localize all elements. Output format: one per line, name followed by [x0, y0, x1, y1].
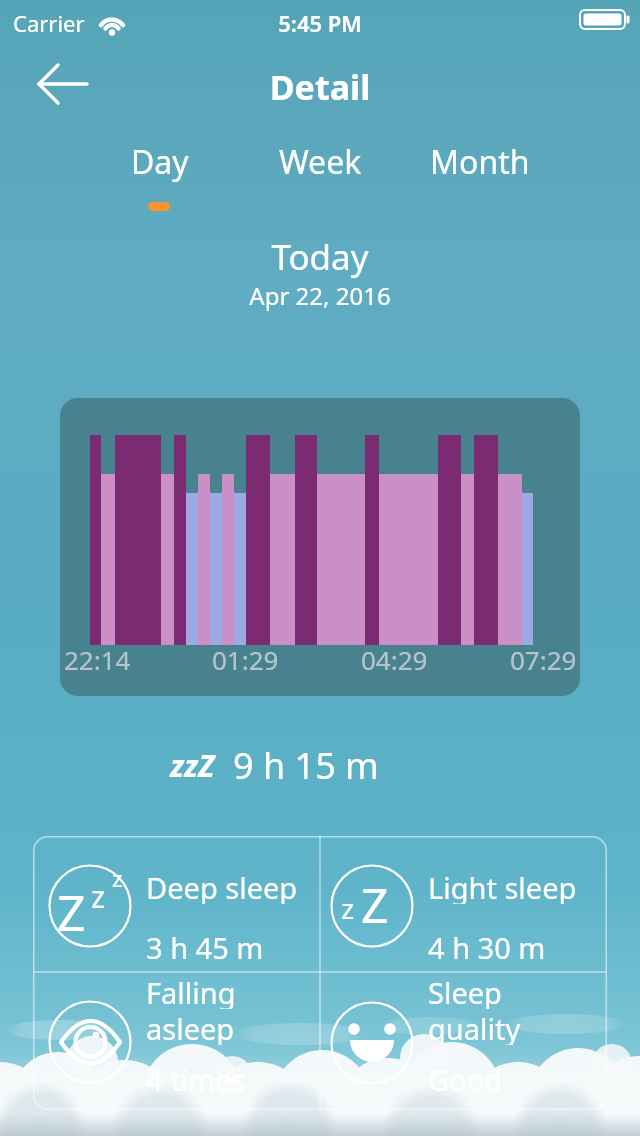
staticText: Carrier: [13, 8, 85, 38]
button[interactable]: Day: [80, 138, 240, 186]
staticText: Day: [131, 140, 189, 184]
staticText: Month: [430, 140, 530, 184]
staticText: Detail: [0, 64, 640, 110]
button[interactable]: [320, 972, 607, 1110]
staticText: 9 h 15 m: [233, 741, 379, 790]
staticText: z: [112, 863, 123, 893]
staticText: z: [91, 876, 106, 917]
staticText: Week: [279, 140, 362, 184]
staticText: zzZ: [170, 745, 215, 786]
staticText: asleep: [146, 1009, 235, 1045]
staticText: Sleep: [428, 973, 502, 1009]
button[interactable]: [320, 836, 607, 972]
staticText: Deep sleep: [146, 868, 298, 904]
staticText: Light sleep: [428, 868, 577, 904]
staticText: quality: [428, 1009, 521, 1045]
staticText: 22:14: [64, 642, 131, 677]
staticText: Apr 22, 2016: [0, 279, 640, 312]
staticText: 3 h 45 m: [146, 928, 264, 964]
staticText: 4 times: [146, 1060, 246, 1096]
staticText: Z: [361, 872, 389, 937]
staticText: z: [341, 889, 355, 927]
staticText: 07:29: [510, 642, 577, 677]
staticText: Today: [0, 233, 640, 281]
button[interactable]: Week: [240, 138, 400, 186]
staticText: 4 h 30 m: [428, 928, 546, 964]
button[interactable]: Month: [400, 138, 560, 186]
button[interactable]: [33, 972, 320, 1110]
button[interactable]: [30, 55, 95, 113]
staticText: 5:45 PM: [0, 8, 640, 38]
staticText: Falling: [146, 973, 236, 1009]
staticText: Z: [57, 878, 86, 946]
button[interactable]: [33, 836, 320, 972]
staticText: 01:29: [212, 642, 279, 677]
staticText: 04:29: [361, 642, 428, 677]
staticText: Good: [428, 1060, 503, 1096]
